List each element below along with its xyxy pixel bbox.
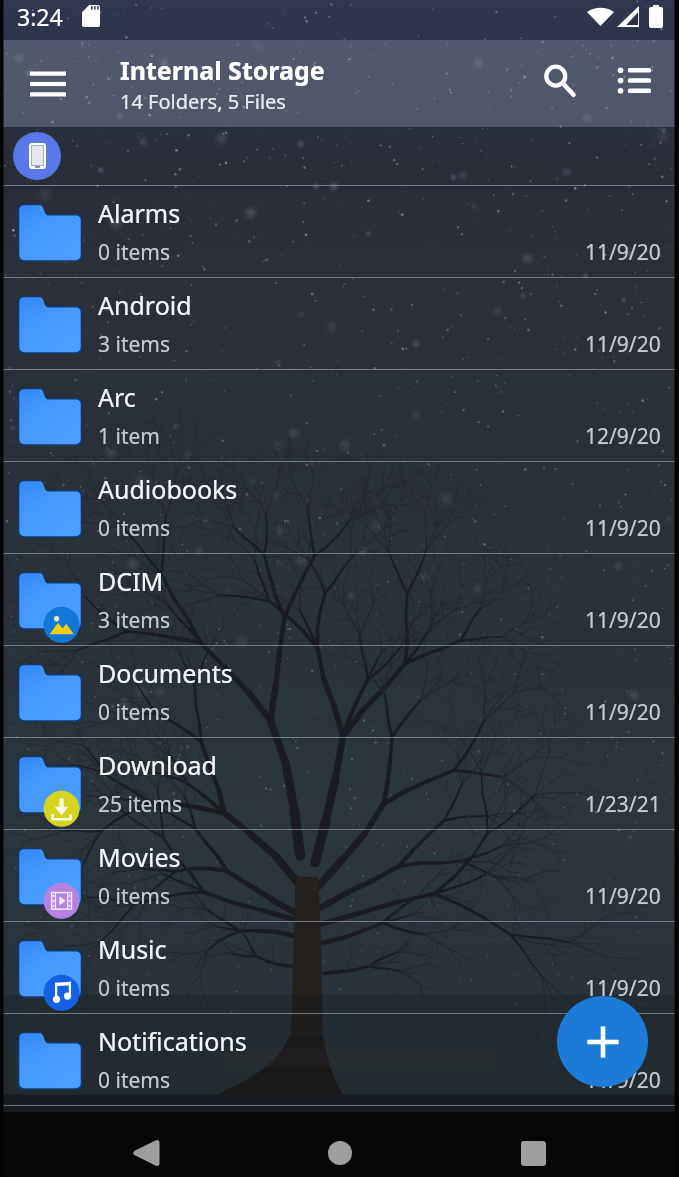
button[interactable]: Download [0,738,679,829]
button[interactable]: Android [0,278,679,369]
staticText: Notifications [98,1024,247,1058]
staticText: Android [98,288,192,322]
staticText: 12/9/20 [585,422,661,451]
staticText: Audiobooks [98,472,238,506]
button[interactable]: Internal Storage [13,132,61,180]
staticText: 0 items [98,974,171,1003]
staticText: Movies [98,840,181,874]
staticText: 11/9/20 [585,974,661,1003]
staticText: 14 Folders, 5 Files [120,88,286,115]
button[interactable]: Add [557,996,648,1087]
staticText: 1/23/21 [585,790,661,819]
button[interactable]: Audiobooks [0,462,679,553]
staticText: 3 items [98,330,171,359]
staticText: 0 items [98,1066,171,1095]
staticText: 1 item [98,422,160,451]
staticText: 0 items [98,698,171,727]
button[interactable]: Back [114,1123,174,1177]
button[interactable]: Menu [0,40,96,127]
staticText: 25 items [98,790,183,819]
staticText: 11/9/20 [585,882,661,911]
button[interactable]: Notifications [0,1014,679,1105]
staticText: Internal Storage [120,53,325,87]
staticText: 11/9/20 [585,1066,661,1095]
button[interactable]: Home [310,1123,370,1177]
staticText: 0 items [98,514,171,543]
staticText: 3 items [98,606,171,635]
staticText: Documents [98,656,233,690]
button[interactable]: Music [0,922,679,1013]
button[interactable]: Documents [0,646,679,737]
button[interactable]: Movies [0,830,679,921]
staticText: Alarms [98,196,181,230]
button[interactable]: Alarms [0,186,679,277]
staticText: 0 items [98,882,171,911]
staticText: 11/9/20 [585,606,661,635]
button[interactable]: View options [594,40,670,127]
staticText: 11/9/20 [585,698,661,727]
button[interactable]: Search [520,40,594,127]
button[interactable]: Recents [503,1123,563,1177]
staticText: Music [98,932,167,966]
staticText: 0 items [98,238,171,267]
staticText: Download [98,748,217,782]
staticText: 11/9/20 [585,514,661,543]
staticText: 3:24 [17,1,63,32]
staticText: DCIM [98,564,164,598]
staticText: Arc [98,380,136,414]
staticText: 11/9/20 [585,238,661,267]
staticText: 11/9/20 [585,330,661,359]
button[interactable]: Arc [0,370,679,461]
button[interactable]: DCIM [0,554,679,645]
